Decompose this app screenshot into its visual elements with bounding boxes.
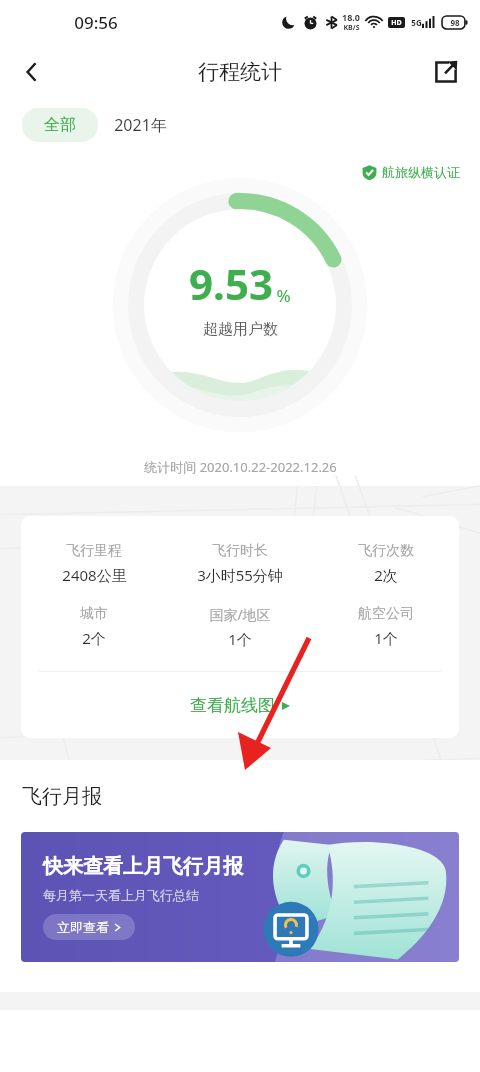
button[interactable]: 立即查看	[43, 914, 135, 940]
staticText: 飞行时长	[212, 542, 268, 560]
staticText: 1个	[228, 629, 252, 649]
staticText: 18.0	[342, 11, 360, 23]
staticText: 飞行月报	[22, 784, 102, 809]
staticText: 3小时55分钟	[197, 565, 283, 585]
staticText: 国家/地区	[209, 605, 271, 624]
staticText: 超越用户数	[203, 320, 278, 339]
staticText: %	[276, 284, 291, 307]
staticText: 2408公里	[62, 565, 127, 585]
staticText: 2个	[82, 628, 106, 648]
staticText: 航旅纵横认证	[382, 164, 460, 180]
button[interactable]: 飞行里程	[21, 516, 459, 738]
staticText: KB/S	[343, 23, 360, 33]
staticText: 每月第一天看上月飞行总结	[43, 887, 199, 903]
button[interactable]: Share	[422, 48, 470, 96]
staticText: 立即查看	[57, 919, 109, 935]
staticText: 航空公司	[358, 605, 414, 623]
staticText: 快来查看上月飞行月报	[43, 854, 243, 879]
staticText: HD	[391, 18, 402, 28]
staticText: 全部	[44, 115, 76, 135]
button[interactable]: 2021年	[98, 107, 183, 143]
staticText: 飞行次数	[358, 542, 414, 560]
staticText: 1个	[374, 628, 398, 648]
button[interactable]: 快来查看上月飞行月报	[21, 832, 459, 962]
staticText: 5G	[411, 17, 422, 28]
staticText: 行程统计	[198, 59, 282, 85]
staticText: 2021年	[114, 114, 167, 136]
staticText: 09:56	[74, 11, 118, 34]
button[interactable]: Back	[8, 48, 56, 96]
staticText: 城市	[80, 605, 108, 623]
staticText: 9.53	[189, 255, 273, 312]
staticText: 查看航线图	[190, 695, 275, 716]
staticText: 飞行里程	[66, 542, 122, 560]
staticText: 2次	[374, 565, 398, 585]
button[interactable]: 查看航线图	[176, 689, 304, 722]
button[interactable]: 全部	[22, 108, 98, 142]
staticText: 统计时间 2020.10.22-2022.12.26	[144, 458, 337, 476]
staticText: 98	[450, 17, 460, 28]
